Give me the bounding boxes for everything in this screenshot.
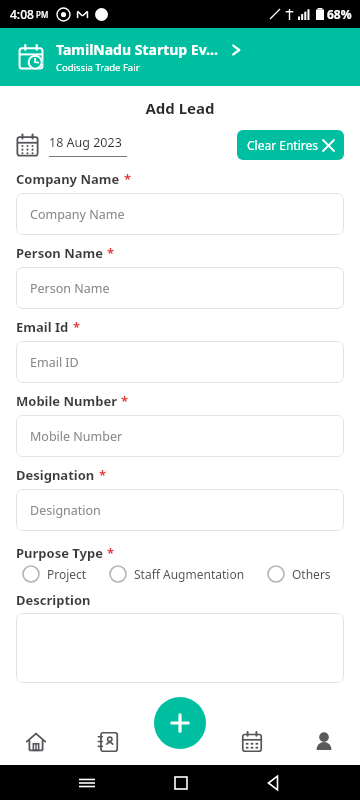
- button[interactable]: 18 Aug 2023: [16, 134, 127, 157]
- staticText: 18 Aug 2023: [49, 134, 122, 151]
- button[interactable]: Mobile Number: [16, 415, 344, 457]
- staticText: Person Name: [30, 280, 110, 297]
- staticText: Company Name: [30, 206, 125, 223]
- button[interactable]: Others: [267, 565, 331, 583]
- staticText: Mobile Number: [16, 392, 117, 410]
- staticText: *: [107, 244, 115, 262]
- button[interactable]: TamilNadu Startup Ev...: [0, 28, 360, 86]
- button[interactable]: Calendar: [216, 718, 288, 765]
- staticText: *: [121, 392, 129, 410]
- staticText: PM: [36, 9, 49, 20]
- staticText: Email Id: [16, 318, 69, 336]
- button[interactable]: Contacts: [72, 718, 144, 765]
- staticText: Company Name: [16, 170, 120, 188]
- button[interactable]: Person Name: [16, 267, 344, 309]
- staticText: Designation: [30, 502, 101, 519]
- button[interactable]: Clear Entires: [237, 130, 344, 160]
- staticText: 68%: [327, 6, 352, 22]
- staticText: 4:08: [10, 6, 34, 22]
- staticText: Person Name: [16, 244, 103, 262]
- button[interactable]: Staff Augmentation: [109, 565, 245, 583]
- staticText: Email ID: [30, 354, 79, 371]
- staticText: Mobile Number: [30, 428, 123, 445]
- button[interactable]: Company Name: [16, 193, 344, 235]
- button[interactable]: Designation: [16, 489, 344, 531]
- staticText: Clear Entires: [247, 137, 319, 153]
- staticText: Description: [16, 591, 91, 609]
- button[interactable]: Profile: [288, 718, 360, 765]
- staticText: Add Lead: [0, 98, 360, 118]
- staticText: Staff Augmentation: [134, 566, 245, 582]
- staticText: *: [107, 544, 115, 562]
- button[interactable]: Home: [0, 718, 72, 765]
- staticText: *: [99, 466, 107, 484]
- staticText: *: [73, 318, 81, 336]
- staticText: Purpose Type: [16, 544, 103, 562]
- button[interactable]: Email ID: [16, 341, 344, 383]
- button[interactable]: [16, 613, 344, 683]
- staticText: Others: [292, 566, 331, 582]
- button[interactable]: Project: [22, 565, 87, 583]
- button[interactable]: Add: [154, 697, 206, 749]
- staticText: *: [124, 170, 132, 188]
- staticText: Project: [47, 566, 87, 582]
- staticText: TamilNadu Startup Ev...: [56, 40, 218, 59]
- staticText: Codissia Trade Fair: [56, 61, 140, 74]
- staticText: Designation: [16, 466, 95, 484]
